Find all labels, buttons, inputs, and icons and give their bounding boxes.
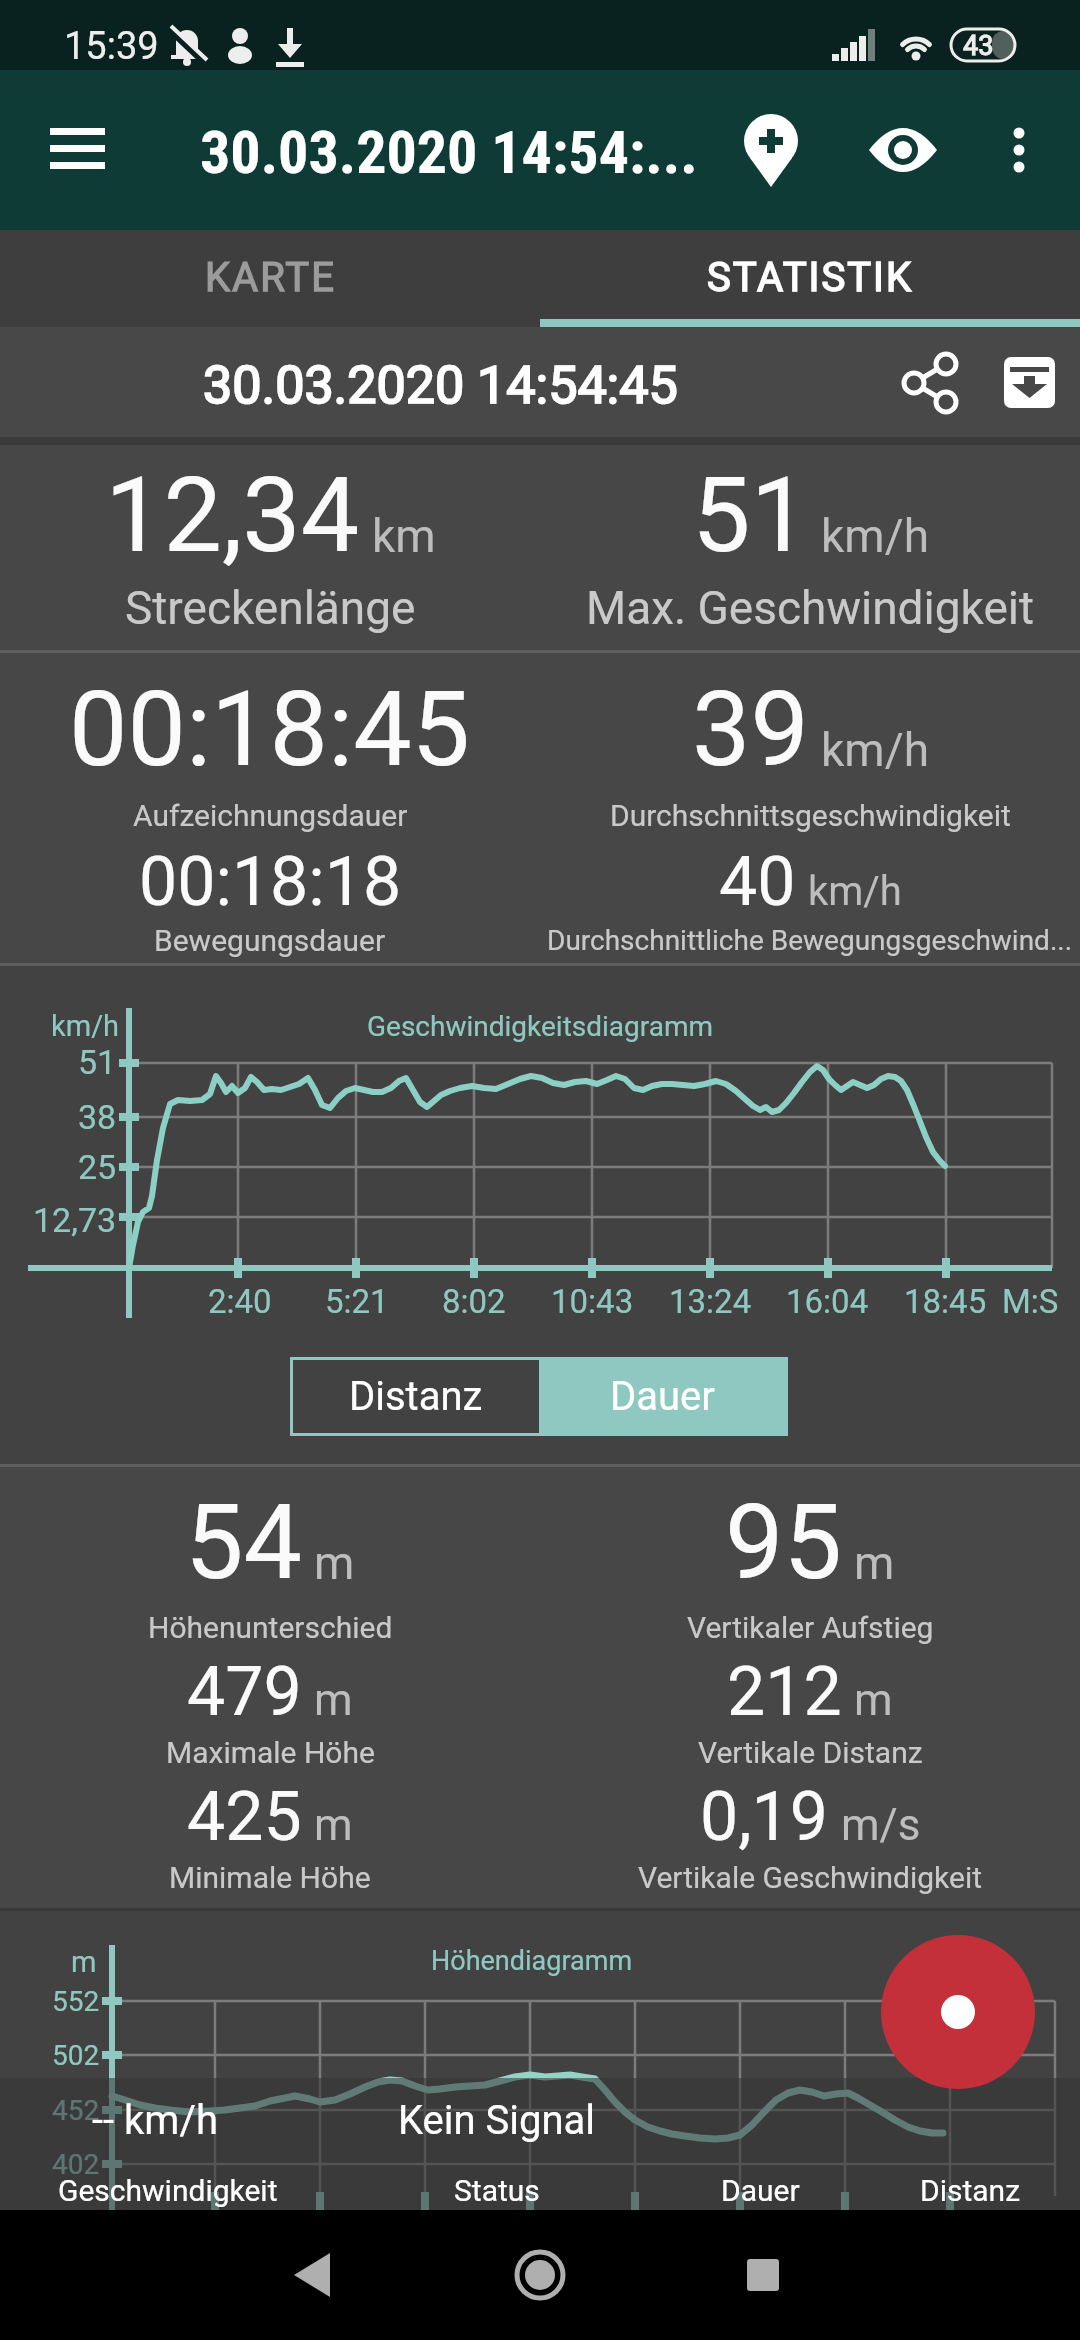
button[interactable] [890,348,966,424]
staticText: 38 [78,1097,117,1137]
staticText: Bewegungsdauer [154,923,386,958]
staticText: 51 [78,1042,117,1082]
staticText: Vertikale Distanz [698,1735,923,1770]
staticText: 402 [52,2148,100,2181]
staticText: Distanz [920,2173,1021,2208]
staticText: km/h [821,723,929,777]
staticText: 18:45 [904,1282,987,1321]
staticText: M:S [1002,1282,1059,1321]
staticText: Distanz [349,1373,483,1420]
staticText: Minimale Höhe [169,1860,371,1895]
staticText: m/s [841,1799,921,1851]
staticText: 552 [52,1985,100,2018]
staticText: 25 [78,1147,117,1187]
staticText: m [854,1536,895,1590]
staticText: 15:39 [64,24,159,69]
staticText: 00:18:18 [139,842,402,922]
staticText: Kein Signal [398,2097,596,2144]
staticText: 43 [963,30,994,62]
staticText: 12,34 [105,455,360,577]
staticText: Höhenunterschied [148,1610,393,1645]
staticText: m [314,1799,353,1851]
staticText: 51 [692,455,809,577]
button[interactable] [500,2235,580,2315]
staticText: Vertikaler Aufstieg [687,1610,934,1645]
staticText: 10:43 [551,1282,634,1321]
staticText: 16:04 [786,1282,869,1321]
staticText: KARTE [205,254,336,301]
button[interactable] [995,112,1043,188]
staticText: 0,19 [700,1777,829,1857]
staticText: Max. Geschwindigkeit [586,581,1035,635]
staticText: 425 [187,1777,302,1857]
staticText: 5:21 [325,1282,389,1321]
staticText: 95 [725,1482,842,1604]
staticText: 00:18:45 [69,669,471,791]
staticText: Höhendiagramm [431,1945,633,1977]
staticText: km/h [821,509,929,563]
button[interactable] [1000,352,1060,412]
staticText: Durchschnittsgeschwindigkeit [610,798,1011,833]
staticText: km/h [51,1009,120,1043]
staticText: 54 [185,1482,302,1604]
staticText: Geschwindigkeit [58,2173,278,2208]
button[interactable] [540,230,1080,327]
button[interactable] [881,1935,1035,2089]
staticText: 12,73 [33,1200,117,1240]
staticText: m [314,1674,353,1726]
button[interactable]: Dauer [539,1360,785,1433]
staticText: 30.03.2020 14:54:45 [203,355,678,416]
button[interactable] [272,2235,352,2315]
staticText: m [854,1674,893,1726]
staticText: km/h [808,868,902,915]
staticText: Streckenlänge [125,581,416,635]
staticText: Dauer [721,2173,800,2208]
staticText: 13:24 [669,1282,752,1321]
staticText: km [372,509,436,563]
staticText: 30.03.2020 14:54:... [200,117,698,187]
staticText: Dauer [610,1373,715,1420]
staticText: Geschwindigkeitsdiagramm [367,1010,714,1043]
staticText: 479 [187,1652,302,1732]
staticText: m [71,1945,97,1979]
staticText: 40 [719,842,796,922]
staticText: Durchschnittliche Bewegungsgeschwind... [547,924,1073,957]
staticText: Status [454,2173,540,2208]
staticText: 502 [52,2039,100,2072]
staticText: m [314,1536,355,1590]
button[interactable]: Distanz [293,1360,539,1433]
staticText: 452 [52,2094,100,2127]
staticText: 212 [727,1652,842,1732]
staticText: Vertikale Geschwindigkeit [638,1860,982,1895]
staticText: Maximale Höhe [166,1735,375,1770]
staticText: STATISTIK [707,254,913,301]
staticText: -- km/h [92,2097,218,2144]
staticText: Aufzeichnungsdauer [133,798,408,833]
button[interactable] [723,2235,803,2315]
button[interactable] [735,105,807,195]
staticText: 39 [692,669,809,791]
button[interactable] [40,118,120,182]
staticText: 2:40 [208,1282,272,1321]
button[interactable] [867,114,939,186]
button[interactable] [0,230,540,327]
staticText: 8:02 [442,1282,506,1321]
